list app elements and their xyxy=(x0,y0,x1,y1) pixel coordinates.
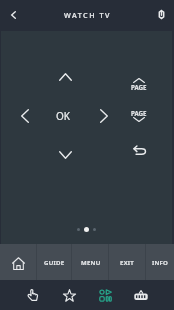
button[interactable]: Power xyxy=(149,2,173,26)
button[interactable]: Favorites xyxy=(51,280,87,310)
button[interactable]: Back xyxy=(1,3,25,27)
button[interactable]: Apps xyxy=(87,280,123,310)
staticText: INFO xyxy=(152,258,169,266)
button[interactable]: Page down xyxy=(124,109,154,131)
button[interactable]: Up xyxy=(53,65,77,89)
button[interactable]: EXIT xyxy=(109,244,146,280)
staticText: GUIDE xyxy=(44,258,65,266)
button[interactable]: Left xyxy=(13,104,37,128)
button[interactable]: Keyboard xyxy=(123,280,159,310)
button[interactable]: Back xyxy=(128,138,152,162)
button[interactable]: Down xyxy=(53,143,77,167)
staticText: PAGE xyxy=(131,109,147,117)
button[interactable]: MENU xyxy=(72,244,109,280)
button[interactable]: OK xyxy=(50,106,76,126)
button[interactable]: Right xyxy=(92,104,116,128)
staticText: MENU xyxy=(81,258,101,266)
staticText: WATCH TV xyxy=(64,10,111,20)
button[interactable]: Touchpad xyxy=(15,280,51,310)
button[interactable]: INFO xyxy=(146,244,174,280)
staticText: PAGE xyxy=(131,83,147,91)
staticText: OK xyxy=(56,109,70,123)
button[interactable]: Home xyxy=(0,244,37,280)
staticText: EXIT xyxy=(120,258,135,266)
button[interactable]: Page up xyxy=(124,78,154,100)
button[interactable]: GUIDE xyxy=(37,244,72,280)
